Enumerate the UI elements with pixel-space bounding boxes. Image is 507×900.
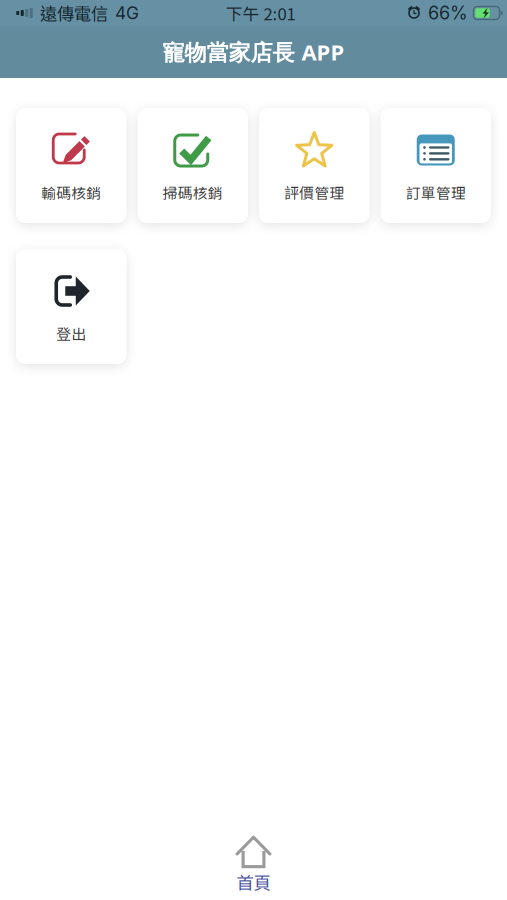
- staticText: 登出: [56, 323, 86, 344]
- staticText: 掃碼核銷: [163, 182, 223, 203]
- staticText: 訂單管理: [406, 182, 466, 203]
- staticText: 4G: [115, 2, 139, 23]
- button[interactable]: 評價管理: [259, 108, 369, 223]
- staticText: 66%: [428, 2, 468, 24]
- staticText: 輸碼核銷: [41, 182, 101, 203]
- staticText: 評價管理: [284, 182, 344, 203]
- staticText: 寵物當家店長 APP: [162, 37, 344, 67]
- button[interactable]: 訂單管理: [380, 108, 491, 223]
- button[interactable]: 首頁: [193, 835, 313, 895]
- button[interactable]: 輸碼核銷: [16, 108, 126, 223]
- staticText: 首頁: [236, 869, 270, 895]
- button[interactable]: 掃碼核銷: [137, 108, 248, 223]
- button[interactable]: 登出: [16, 249, 126, 364]
- staticText: 下午 2:01: [225, 1, 295, 25]
- staticText: 遠傳電信: [40, 0, 108, 26]
